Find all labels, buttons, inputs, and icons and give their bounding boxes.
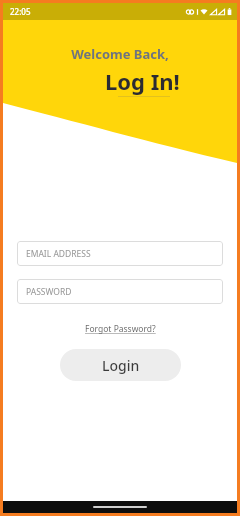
button[interactable]: Login xyxy=(60,349,181,381)
staticText: 22:05 xyxy=(10,6,31,17)
staticText: Log In! xyxy=(105,66,180,96)
staticText: EMAIL ADDRESS xyxy=(26,248,91,260)
staticText: PASSWORD xyxy=(26,286,72,298)
button[interactable]: EMAIL ADDRESS xyxy=(17,241,223,266)
button[interactable]: PASSWORD xyxy=(17,279,223,304)
button[interactable]: Forgot Password? xyxy=(81,321,160,337)
staticText: Welcome Back, xyxy=(71,45,169,63)
staticText: Forgot Password? xyxy=(85,323,156,335)
staticText: Login xyxy=(102,356,140,375)
